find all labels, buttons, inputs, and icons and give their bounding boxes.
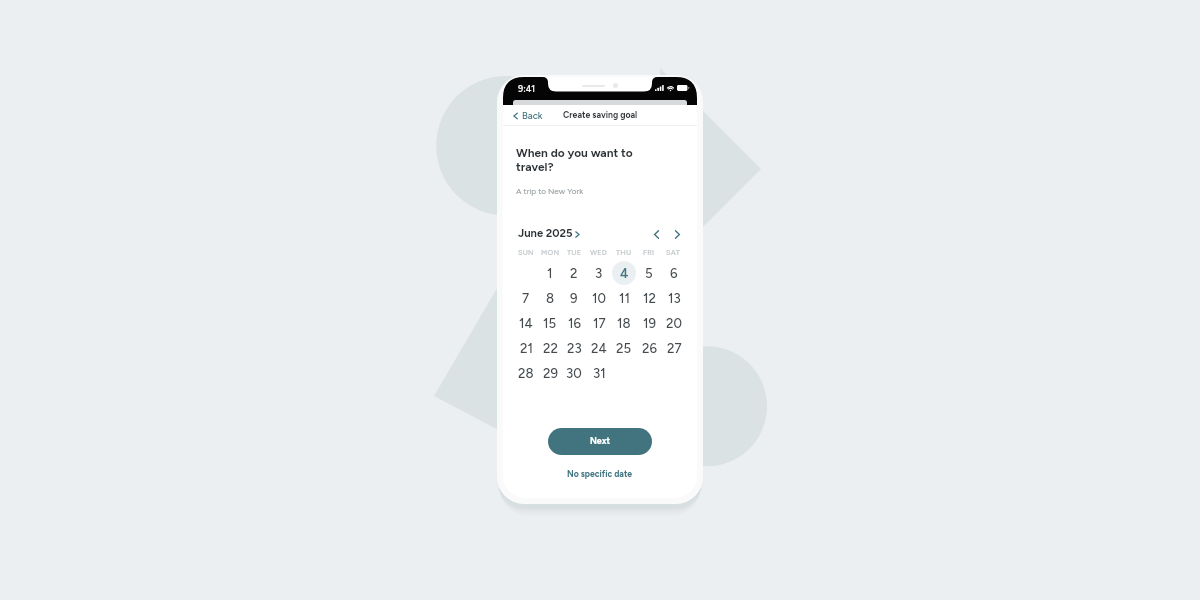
staticText: 9 [570, 290, 578, 306]
staticText: THU [616, 248, 632, 257]
staticText: 29 [543, 365, 558, 381]
button[interactable]: 13 [662, 286, 686, 310]
staticText: 17 [593, 315, 606, 331]
button[interactable]: 25 [612, 336, 636, 360]
staticText: 18 [617, 315, 631, 331]
button[interactable]: 19 [637, 311, 661, 335]
staticText: 28 [518, 365, 534, 381]
staticText: 11 [619, 290, 630, 306]
staticText: June 2025 [518, 226, 573, 239]
button[interactable]: 16 [562, 311, 586, 335]
button[interactable]: 11 [612, 286, 636, 310]
staticText: 20 [666, 315, 682, 331]
staticText: MON [541, 248, 560, 257]
button[interactable]: 10 [587, 286, 611, 310]
staticText: 6 [670, 265, 678, 281]
button[interactable]: 15 [538, 311, 562, 335]
staticText: 12 [643, 290, 656, 306]
button[interactable]: 5 [637, 261, 661, 285]
staticText: 31 [593, 365, 606, 381]
staticText: 19 [643, 315, 656, 331]
button[interactable]: 7 [514, 286, 538, 310]
button[interactable]: 27 [662, 336, 686, 360]
staticText: 30 [566, 365, 582, 381]
staticText: When do you want to travel? [516, 146, 633, 174]
staticText: 10 [592, 290, 606, 306]
staticText: 26 [642, 340, 657, 356]
button[interactable]: 21 [514, 336, 538, 360]
staticText: 16 [568, 315, 581, 331]
button[interactable]: Next [548, 428, 652, 455]
staticText: 23 [567, 340, 582, 356]
staticText: 27 [667, 340, 682, 356]
button[interactable]: 8 [538, 286, 562, 310]
staticText: 25 [616, 340, 632, 356]
staticText: 3 [595, 265, 603, 281]
button[interactable]: 3 [587, 261, 611, 285]
button[interactable]: 22 [538, 336, 562, 360]
button[interactable]: 9 [562, 286, 586, 310]
staticText: 5 [645, 265, 653, 281]
button[interactable]: 26 [637, 336, 661, 360]
staticText: SUN [518, 248, 535, 257]
button[interactable]: June 2025 [518, 226, 580, 239]
staticText: Create saving goal [563, 110, 638, 120]
staticText: A trip to New York [516, 186, 584, 196]
button[interactable]: 20 [662, 311, 686, 335]
staticText: 4 [620, 265, 629, 281]
button[interactable]: 23 [562, 336, 586, 360]
staticText: Back [522, 110, 543, 121]
staticText: 21 [520, 340, 533, 356]
staticText: FRI [643, 248, 655, 257]
button[interactable]: 1 [538, 261, 562, 285]
staticText: No specific date [567, 469, 633, 479]
button[interactable]: 6 [662, 261, 686, 285]
button[interactable]: 31 [587, 361, 611, 385]
button[interactable]: 4 [612, 261, 636, 285]
button[interactable]: Back [503, 107, 551, 124]
staticText: 2 [570, 265, 578, 281]
staticText: 13 [668, 290, 681, 306]
button[interactable]: 24 [587, 336, 611, 360]
button[interactable]: Next month [671, 228, 684, 241]
staticText: SAT [666, 248, 681, 257]
staticText: 24 [591, 340, 607, 356]
button[interactable]: 30 [562, 361, 586, 385]
button[interactable]: 28 [514, 361, 538, 385]
staticText: 15 [543, 315, 557, 331]
button[interactable]: 17 [587, 311, 611, 335]
button[interactable]: Previous month [650, 228, 663, 241]
staticText: Next [590, 436, 610, 447]
staticText: 22 [543, 340, 558, 356]
staticText: WED [590, 248, 608, 257]
button[interactable]: 29 [538, 361, 562, 385]
button[interactable]: No specific date [559, 464, 641, 484]
staticText: 9:41 [518, 83, 536, 94]
button[interactable]: 2 [562, 261, 586, 285]
staticText: 14 [519, 315, 533, 331]
staticText: 1 [547, 265, 553, 281]
button[interactable]: 18 [612, 311, 636, 335]
button[interactable]: 12 [637, 286, 661, 310]
staticText: 8 [546, 290, 555, 306]
button[interactable]: 14 [514, 311, 538, 335]
staticText: 7 [522, 290, 530, 306]
staticText: TUE [567, 248, 582, 257]
